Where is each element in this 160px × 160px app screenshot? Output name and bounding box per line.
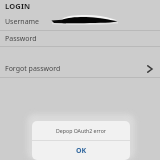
staticText: OK (76, 146, 87, 156)
button[interactable]: Password (0, 31, 160, 46)
button[interactable]: Forgot password (0, 61, 160, 77)
staticText: Username (5, 17, 40, 27)
other: Forgot password (145, 64, 155, 74)
staticText: Password (5, 34, 37, 44)
button[interactable]: Username (0, 13, 160, 30)
staticText: LOGIN (5, 1, 31, 11)
button[interactable]: OK (32, 141, 130, 160)
staticText: Forgot password (5, 64, 145, 74)
staticText: Depop OAuth2 error (56, 127, 106, 134)
